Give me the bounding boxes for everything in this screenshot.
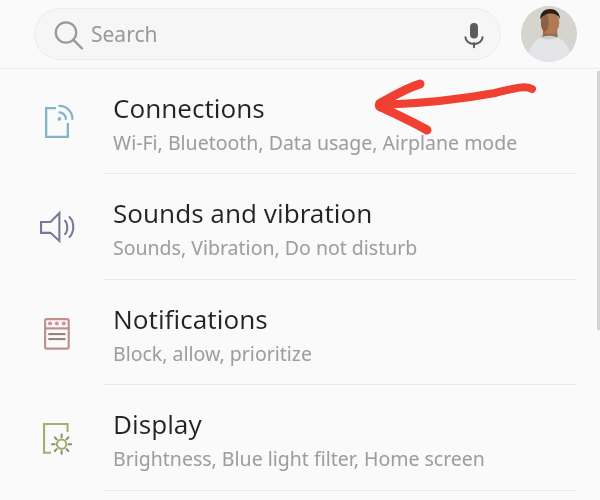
- button[interactable]: Account profile: [521, 6, 577, 62]
- staticText: Search: [91, 20, 158, 49]
- staticText: Sounds, Vibration, Do not disturb: [113, 234, 418, 261]
- staticText: Block, allow, prioritize: [113, 340, 313, 367]
- staticText: Sounds and vibration: [113, 195, 373, 230]
- button[interactable]: Notifications: [0, 280, 600, 385]
- button[interactable]: Search: [34, 8, 501, 60]
- button[interactable]: Display: [0, 385, 600, 490]
- staticText: Wi-Fi, Bluetooth, Data usage, Airplane m…: [113, 129, 518, 156]
- staticText: Connections: [113, 90, 265, 125]
- staticText: Display: [113, 406, 202, 441]
- staticText: Notifications: [113, 301, 268, 336]
- button[interactable]: Voice search: [447, 8, 501, 60]
- staticText: Brightness, Blue light filter, Home scre…: [113, 445, 485, 472]
- button[interactable]: Connections: [0, 69, 600, 174]
- button[interactable]: Sounds and vibration: [0, 174, 600, 279]
